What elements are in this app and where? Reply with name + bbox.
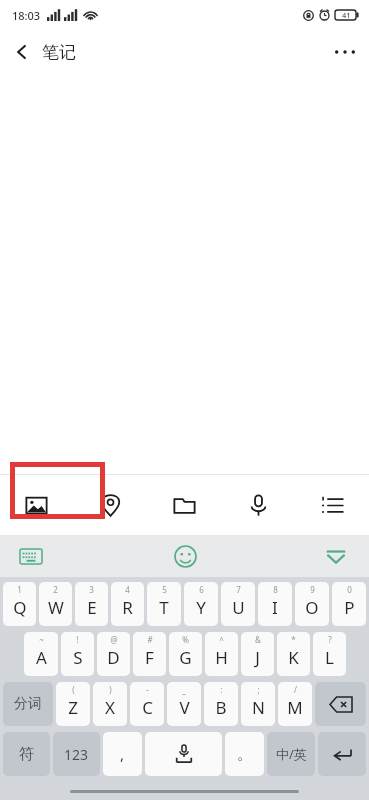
staticText: U: [232, 596, 245, 619]
button[interactable]: 。: [225, 732, 264, 776]
staticText: Z: [68, 696, 78, 719]
button[interactable]: ;: [241, 682, 275, 726]
staticText: M: [287, 696, 303, 719]
button[interactable]: 5: [147, 582, 181, 626]
staticText: H: [215, 646, 228, 669]
staticText: 中/英: [276, 745, 307, 763]
staticText: R: [122, 596, 133, 619]
button[interactable]: 9: [295, 582, 329, 626]
button[interactable]: 6: [184, 582, 218, 626]
staticText: *: [291, 634, 296, 645]
button[interactable]: ?: [313, 632, 346, 676]
button[interactable]: ): [93, 682, 127, 726]
button[interactable]: Insert image: [0, 475, 73, 535]
staticText: G: [179, 646, 192, 669]
staticText: E: [87, 596, 97, 619]
button[interactable]: /: [278, 682, 312, 726]
button[interactable]: Location: [73, 475, 147, 535]
staticText: !: [76, 634, 79, 645]
staticText: _: [182, 684, 186, 695]
staticText: 9: [310, 584, 315, 595]
staticText: 7: [236, 584, 241, 595]
button[interactable]: Emoji: [167, 538, 203, 574]
staticText: ?: [328, 634, 332, 645]
button[interactable]: List: [295, 475, 369, 535]
button[interactable]: Folder: [147, 475, 221, 535]
staticText: ): [109, 684, 112, 695]
button[interactable]: @: [97, 632, 130, 676]
button[interactable]: &: [241, 632, 274, 676]
staticText: B: [215, 696, 227, 719]
button[interactable]: :: [204, 682, 238, 726]
button[interactable]: 4: [111, 582, 144, 626]
button[interactable]: Hide keyboard: [319, 539, 353, 573]
staticText: 3: [89, 584, 94, 595]
staticText: ;: [257, 684, 260, 695]
button[interactable]: 2: [39, 582, 72, 626]
staticText: T: [159, 596, 169, 619]
button[interactable]: Enter: [318, 732, 366, 776]
button[interactable]: ,: [103, 732, 142, 776]
button[interactable]: !: [61, 632, 94, 676]
button[interactable]: %: [169, 632, 202, 676]
staticText: -: [146, 684, 149, 695]
button[interactable]: ^: [205, 632, 238, 676]
staticText: &: [255, 634, 261, 645]
staticText: 笔记: [42, 42, 76, 63]
button[interactable]: 符: [3, 732, 50, 776]
button[interactable]: ~: [24, 632, 58, 676]
staticText: 分词: [14, 695, 42, 713]
button[interactable]: #: [133, 632, 166, 676]
staticText: ,: [120, 744, 125, 764]
staticText: @: [110, 634, 118, 645]
button[interactable]: More options: [321, 30, 369, 74]
staticText: L: [325, 646, 334, 669]
staticText: 5: [162, 584, 167, 595]
button[interactable]: Space, voice input: [145, 732, 222, 776]
staticText: 8: [273, 584, 278, 595]
button[interactable]: 中/英: [267, 732, 315, 776]
button[interactable]: Backspace: [315, 682, 366, 726]
staticText: A: [36, 646, 47, 669]
staticText: P: [344, 596, 355, 619]
staticText: 。: [237, 745, 252, 764]
button[interactable]: 3: [75, 582, 108, 626]
staticText: W: [48, 596, 64, 619]
button[interactable]: _: [167, 682, 201, 726]
button[interactable]: 0: [332, 582, 366, 626]
staticText: Y: [196, 596, 206, 619]
button[interactable]: (: [56, 682, 90, 726]
staticText: S: [73, 646, 83, 669]
button[interactable]: Keyboard settings: [14, 539, 48, 573]
staticText: K: [288, 646, 299, 669]
staticText: (: [72, 684, 75, 695]
button[interactable]: -: [130, 682, 164, 726]
staticText: N: [252, 696, 265, 719]
staticText: 6: [199, 584, 204, 595]
button[interactable]: 123: [53, 732, 100, 776]
button[interactable]: Voice input: [221, 475, 295, 535]
staticText: 2: [53, 584, 58, 595]
staticText: #: [147, 634, 153, 645]
button[interactable]: 8: [258, 582, 292, 626]
staticText: 18:03: [12, 8, 41, 23]
staticText: 123: [64, 745, 89, 764]
staticText: :: [220, 684, 223, 695]
staticText: 0: [347, 584, 352, 595]
button[interactable]: Back: [0, 30, 44, 74]
button[interactable]: *: [277, 632, 310, 676]
staticText: 41: [342, 10, 351, 20]
staticText: D: [107, 646, 120, 669]
staticText: Q: [13, 596, 27, 619]
staticText: ~: [39, 634, 44, 645]
staticText: /: [294, 684, 297, 695]
staticText: 符: [19, 745, 34, 764]
staticText: F: [145, 646, 154, 669]
button[interactable]: 分词: [3, 682, 53, 726]
staticText: ^: [219, 634, 224, 645]
button[interactable]: 1: [3, 582, 36, 626]
staticText: V: [179, 696, 190, 719]
staticText: %: [182, 634, 189, 645]
staticText: O: [305, 596, 319, 619]
button[interactable]: 7: [221, 582, 255, 626]
